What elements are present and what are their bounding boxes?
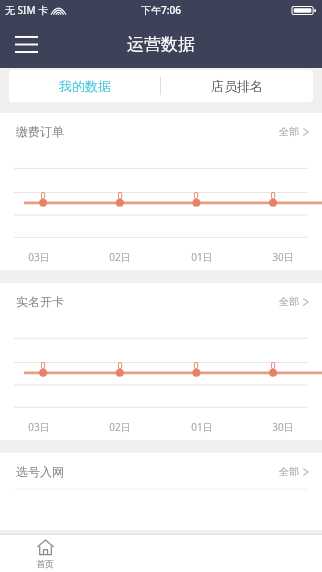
button[interactable]: 全部 [277, 121, 311, 142]
staticText: 30日 [272, 250, 294, 264]
staticText: 03日 [28, 420, 50, 434]
staticText: 无 SIM 卡 [5, 3, 49, 17]
staticText: 选号入网 [16, 464, 64, 479]
staticText: 全部 [279, 125, 299, 138]
staticText: 01日 [191, 250, 213, 264]
button[interactable]: 首页 [36, 539, 54, 569]
staticText: 实名开卡 [16, 294, 64, 309]
staticText: 店员排名 [211, 78, 263, 94]
staticText: 02日 [109, 420, 131, 434]
staticText: 0 [39, 189, 47, 201]
staticText: 全部 [279, 465, 299, 478]
button[interactable]: 店员排名 [161, 70, 313, 102]
staticText: 运营数据 [127, 34, 195, 55]
staticText: 01日 [191, 420, 213, 434]
staticText: 0 [116, 359, 124, 371]
button[interactable]: Menu [8, 26, 44, 62]
staticText: 首页 [36, 558, 54, 569]
staticText: 下午7:06 [141, 3, 181, 17]
staticText: 30日 [272, 420, 294, 434]
staticText: 03日 [28, 250, 50, 264]
staticText: 0 [269, 359, 277, 371]
staticText: 0 [116, 189, 124, 201]
button[interactable]: 我的数据 [9, 70, 160, 102]
staticText: 0 [269, 189, 277, 201]
staticText: 0 [192, 189, 200, 201]
staticText: 我的数据 [59, 78, 111, 94]
button[interactable]: 全部 [277, 291, 311, 312]
staticText: 全部 [279, 295, 299, 308]
staticText: 0 [192, 359, 200, 371]
staticText: 02日 [109, 250, 131, 264]
staticText: 缴费订单 [16, 124, 64, 139]
staticText: 0 [39, 359, 47, 371]
button[interactable]: 全部 [277, 461, 311, 482]
